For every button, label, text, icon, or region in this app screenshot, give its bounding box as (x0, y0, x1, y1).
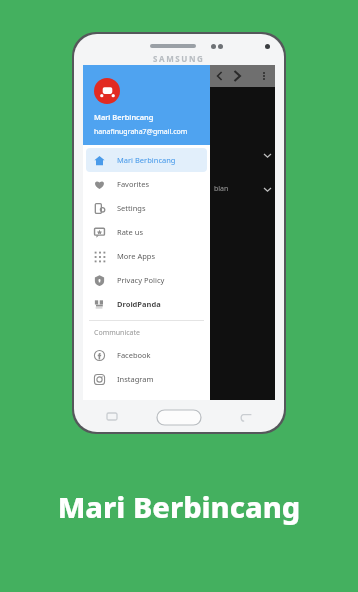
staticText: Mari Berbincang (0, 487, 358, 526)
button[interactable]: Privacy Policy (86, 268, 207, 292)
button[interactable]: Rate us (86, 220, 207, 244)
staticText: Mari Berbincang (117, 155, 176, 165)
staticText: Instagram (117, 374, 154, 384)
staticText: blan (214, 184, 229, 194)
staticText: Favorites (117, 179, 150, 189)
button[interactable]: Mari Berbincang (86, 148, 207, 172)
button[interactable]: More options (256, 68, 272, 84)
staticText: More Apps (117, 251, 156, 261)
button[interactable]: Favorites (86, 172, 207, 196)
button[interactable]: DroidPanda (86, 292, 207, 316)
button[interactable]: Facebook (86, 343, 207, 367)
button[interactable]: Back (212, 68, 228, 84)
staticText: DroidPanda (117, 299, 161, 309)
staticText: Privacy Policy (117, 275, 165, 285)
button[interactable]: Instagram (86, 367, 207, 391)
staticText: Mari Berbincang (94, 112, 154, 122)
button[interactable]: Forward (228, 67, 246, 85)
staticText: Communicate (94, 328, 140, 338)
staticText: Rate us (117, 227, 143, 237)
staticText: SAMSUNG (153, 53, 205, 64)
button[interactable]: Settings (86, 196, 207, 220)
staticText: hanafinugraha7@gmail.com (94, 127, 188, 137)
staticText: Facebook (117, 350, 151, 360)
button[interactable]: More Apps (86, 244, 207, 268)
staticText: Settings (117, 203, 146, 213)
